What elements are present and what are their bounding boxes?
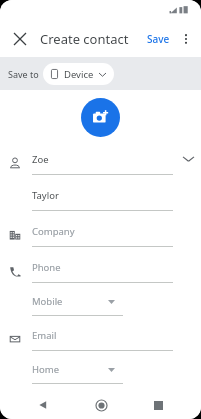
button[interactable]: Expand name fields <box>181 152 195 166</box>
button[interactable]: Email <box>0 325 201 351</box>
button[interactable]: Taylor <box>0 185 201 211</box>
staticText: Save to <box>8 68 39 80</box>
button[interactable]: Home <box>0 360 201 384</box>
staticText: Mobile <box>32 295 63 308</box>
button[interactable]: Recent apps <box>143 391 173 419</box>
button[interactable]: Home <box>86 391 116 419</box>
staticText: Save <box>147 32 170 46</box>
button[interactable]: Zoe <box>0 149 201 175</box>
staticText: Company <box>32 225 75 238</box>
button[interactable]: Mobile <box>0 292 201 316</box>
button[interactable]: Company <box>0 221 201 247</box>
button[interactable]: Phone <box>0 257 201 283</box>
button[interactable]: Back <box>28 391 58 419</box>
button[interactable]: Add photo <box>81 98 120 137</box>
staticText: Zoe <box>32 153 49 166</box>
staticText: Home <box>32 363 60 376</box>
button[interactable]: More options <box>174 27 198 51</box>
button[interactable]: Save <box>144 30 173 48</box>
button[interactable]: Close <box>6 25 34 53</box>
staticText: Phone <box>32 261 61 274</box>
staticText: Taylor <box>32 189 59 202</box>
staticText: Email <box>32 329 57 342</box>
staticText: Create contact <box>40 30 129 48</box>
button[interactable]: Device <box>43 63 114 85</box>
staticText: Device <box>64 68 94 81</box>
